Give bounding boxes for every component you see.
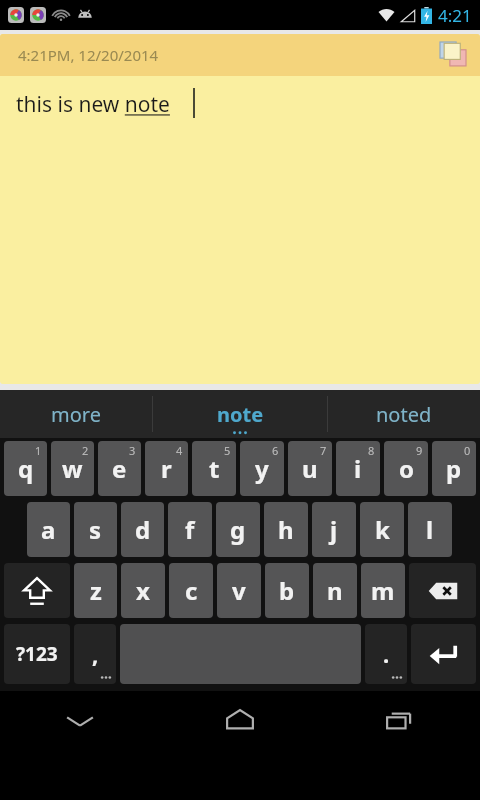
button[interactable]: a [27,502,70,557]
button[interactable]: Home [160,691,320,751]
staticText: c [185,574,198,607]
staticText: note [217,401,264,428]
button[interactable]: e [98,441,141,496]
button[interactable]: Hide keyboard [0,691,160,751]
staticText: y [255,452,269,485]
staticText: , [92,639,99,669]
staticText: 2 [82,443,89,458]
button[interactable]: w [51,441,94,496]
button[interactable]: g [216,502,260,557]
staticText: . [383,639,390,669]
staticText: 7 [320,443,327,458]
button[interactable]: k [360,502,404,557]
staticText: l [426,513,434,546]
button[interactable]: p [432,441,476,496]
button[interactable]: l [408,502,452,557]
staticText: 8 [368,443,375,458]
button[interactable]: i [336,441,380,496]
staticText: o [399,452,414,485]
button[interactable]: f [168,502,212,557]
button[interactable]: y [240,441,284,496]
staticText: w [62,452,83,485]
staticText: z [90,574,102,607]
button[interactable]: s [74,502,117,557]
button[interactable]: v [217,563,261,618]
staticText: k [375,513,390,546]
staticText: 4:21PM, 12/20/2014 [18,45,159,65]
staticText: u [302,452,318,485]
staticText: i [354,452,362,485]
button[interactable]: h [264,502,308,557]
staticText: j [330,513,338,546]
staticText: b [279,574,295,607]
button[interactable]: b [265,563,309,618]
staticText: more [51,401,101,428]
button[interactable]: Recent apps [320,691,480,751]
staticText: x [136,574,150,607]
staticText: q [18,452,34,485]
staticText: this is new note [16,90,170,119]
staticText: s [89,513,102,546]
staticText: n [327,574,343,607]
button[interactable]: r [145,441,188,496]
button[interactable]: more [0,390,152,438]
button[interactable]: t [192,441,236,496]
staticText: r [161,452,172,485]
button[interactable]: z [74,563,117,618]
staticText: f [185,513,195,546]
button[interactable]: noted [328,390,480,438]
button[interactable]: Notes list [436,38,470,72]
button[interactable]: u [288,441,332,496]
button[interactable]: Backspace [409,563,476,618]
staticText: 4:21 [438,4,472,27]
staticText: 9 [416,443,423,458]
staticText: t [209,452,220,485]
button[interactable]: q [4,441,47,496]
staticText: p [446,452,462,485]
staticText: a [41,513,56,546]
staticText: 0 [464,443,471,458]
staticText: 3 [129,443,136,458]
button[interactable]: o [384,441,428,496]
staticText: v [232,574,246,607]
button[interactable]: 4:21PM, 12/20/2014 [0,34,480,384]
button[interactable]: ?123 [4,624,70,684]
staticText: 1 [35,443,42,458]
button[interactable]: x [121,563,165,618]
staticText: m [371,574,395,607]
staticText: ?123 [16,641,58,667]
button[interactable]: m [361,563,405,618]
button[interactable]: Enter [411,624,476,684]
button[interactable]: d [121,502,164,557]
button[interactable]: note [153,390,327,438]
button[interactable]: j [312,502,356,557]
button[interactable]: Shift [4,563,70,618]
button[interactable]: n [313,563,357,618]
staticText: 4 [176,443,183,458]
staticText: e [112,452,127,485]
button[interactable]: , [74,624,116,684]
staticText: 5 [224,443,231,458]
staticText: 6 [272,443,279,458]
staticText: d [135,513,151,546]
staticText: h [278,513,294,546]
button[interactable]: c [169,563,213,618]
button[interactable]: . [365,624,407,684]
staticText: g [230,513,246,546]
staticText: noted [376,401,432,428]
